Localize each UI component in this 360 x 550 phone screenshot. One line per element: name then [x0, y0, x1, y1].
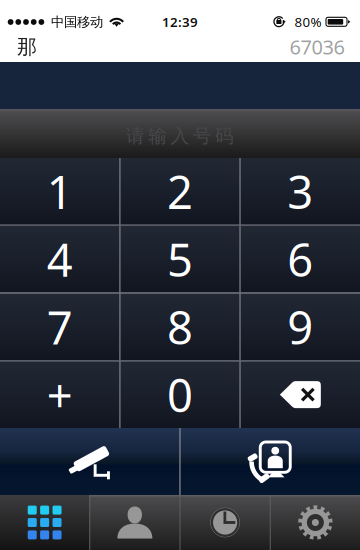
staticText: + [47, 364, 73, 425]
staticText: 80% [294, 13, 321, 31]
staticText: 入 [170, 124, 189, 147]
staticText: 0 [167, 364, 193, 425]
staticText: 4 [47, 229, 73, 289]
button[interactable]: Backspace [241, 361, 360, 428]
staticText: 8 [167, 297, 193, 357]
button[interactable]: 7 [0, 293, 119, 360]
staticText: 5 [167, 229, 193, 289]
button[interactable]: Keypad [0, 495, 89, 550]
staticText: 67036 [289, 33, 344, 60]
button[interactable]: Recents [180, 495, 270, 550]
button[interactable]: 6 [241, 226, 360, 293]
button[interactable]: + [0, 361, 119, 428]
button[interactable]: 5 [120, 226, 240, 293]
button[interactable]: 4 [0, 226, 119, 293]
button[interactable]: Contacts [90, 495, 179, 550]
staticText: 输 [148, 124, 167, 147]
button[interactable]: 3 [241, 158, 360, 225]
button[interactable]: 0 [120, 361, 240, 428]
staticText: 9 [287, 297, 313, 357]
button[interactable]: 1 [0, 158, 119, 225]
staticText: 请 [126, 124, 145, 147]
button[interactable]: 8 [120, 293, 240, 360]
button[interactable]: Settings [271, 495, 360, 550]
button[interactable]: Monitoring camera [0, 428, 179, 495]
button[interactable]: Video intercom [180, 428, 360, 495]
staticText: 中国移动 [51, 14, 103, 30]
button[interactable]: 2 [120, 158, 240, 225]
staticText: 6 [287, 229, 313, 289]
staticText: 码 [215, 124, 234, 147]
staticText: 那 [17, 34, 37, 59]
staticText: 3 [287, 161, 313, 221]
staticText: 7 [47, 297, 73, 357]
staticText: 2 [167, 161, 193, 221]
staticText: 12:39 [162, 13, 198, 31]
button[interactable]: 9 [241, 293, 360, 360]
staticText: 号 [193, 124, 212, 147]
staticText: 1 [47, 161, 73, 221]
